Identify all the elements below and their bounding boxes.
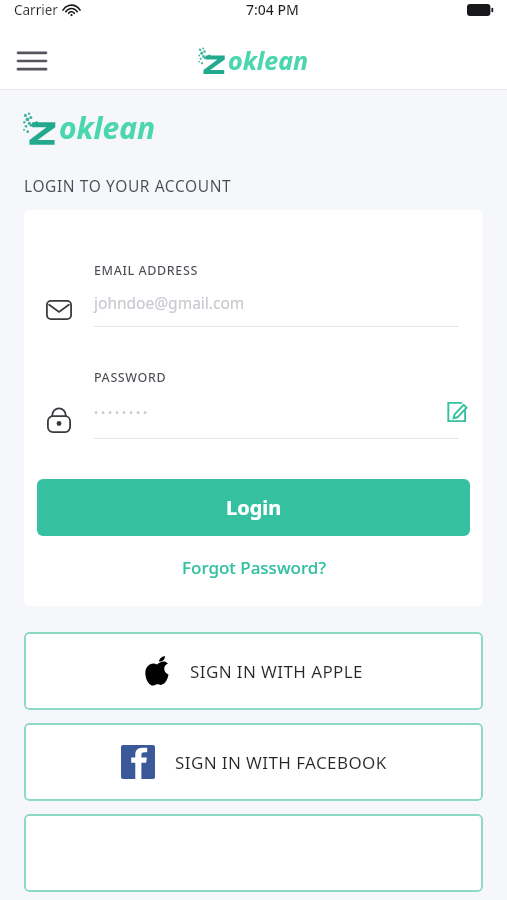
staticText: SIGN IN WITH APPLE [190,660,363,683]
button[interactable]: • • • • • • • • [24,399,483,439]
button[interactable]: Forgot Password? [24,550,483,585]
staticText: Carrier [14,1,58,19]
button[interactable]: Open navigation menu [10,39,54,83]
button[interactable]: Edit password [443,399,469,425]
staticText: • • • • • • • • [94,405,443,420]
staticText: EMAIL ADDRESS [94,262,198,279]
button[interactable]: SIGN IN WITH APPLE [24,632,483,710]
staticText: PASSWORD [94,369,167,386]
staticText: 7:04 PM [246,0,299,19]
staticText: SIGN IN WITH FACEBOOK [175,751,387,774]
staticText: Login [226,494,282,521]
staticText: johndoe@gmail.com [94,292,483,313]
button[interactable]: Sign in [24,814,483,892]
staticText: oklean [59,107,156,148]
button[interactable]: Login [37,479,470,536]
staticText: oklean [228,43,309,77]
staticText: Forgot Password? [182,556,326,579]
staticText: LOGIN TO YOUR ACCOUNT [24,175,232,196]
button[interactable]: SIGN IN WITH FACEBOOK [24,723,483,801]
button[interactable]: johndoe@gmail.com [24,292,483,327]
